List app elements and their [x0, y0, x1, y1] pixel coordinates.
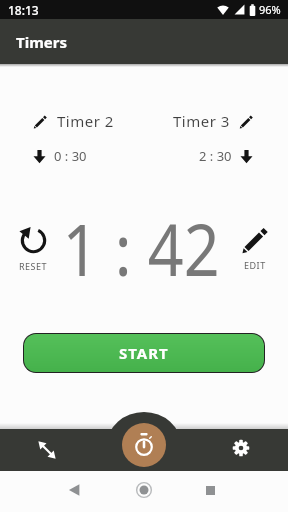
staticText: 2 : 30 [199, 147, 232, 165]
button[interactable] [27, 430, 67, 470]
button[interactable] [128, 474, 160, 506]
staticText: Timers [16, 32, 67, 52]
button[interactable]: Timer 3 [173, 111, 254, 131]
staticText: 0 : 30 [54, 147, 87, 165]
button[interactable]: 2 : 30 [199, 147, 254, 165]
button[interactable]: RESET [0, 225, 66, 272]
staticText: 96% [259, 2, 281, 17]
button[interactable]: EDIT [222, 225, 288, 271]
button[interactable] [194, 474, 226, 506]
button[interactable]: Timer 2 [33, 111, 114, 131]
button[interactable] [58, 474, 90, 506]
button[interactable] [221, 428, 261, 468]
button[interactable] [122, 423, 166, 467]
staticText: Timer 2 [57, 111, 114, 131]
button[interactable]: START [24, 334, 264, 372]
button[interactable]: 0 : 30 [32, 147, 87, 165]
staticText: RESET [19, 260, 48, 272]
staticText: EDIT [244, 259, 266, 271]
staticText: START [119, 343, 169, 363]
staticText: 1 : 42 [41, 199, 241, 297]
staticText: 18:13 [8, 2, 39, 18]
staticText: Timer 3 [173, 111, 230, 131]
